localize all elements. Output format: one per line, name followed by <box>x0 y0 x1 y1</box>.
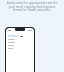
staticText: Easily store the appropriate case for yo… <box>5 1 59 11</box>
button[interactable] <box>6 28 34 72</box>
